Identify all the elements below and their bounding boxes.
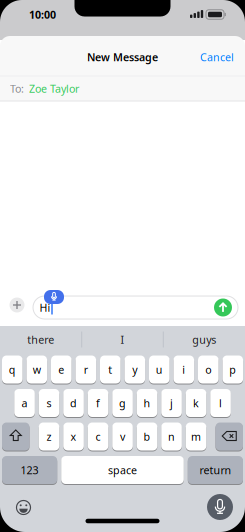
button[interactable]: Dictate: [207, 494, 233, 520]
button[interactable]: u: [149, 355, 170, 384]
button[interactable]: Delete: [215, 422, 243, 451]
button[interactable]: i: [173, 355, 194, 384]
staticText: Zoe Taylor: [29, 81, 79, 96]
button[interactable]: h: [137, 388, 157, 417]
button[interactable]: g: [112, 388, 133, 417]
button[interactable]: a: [14, 388, 35, 417]
staticText: x: [70, 429, 76, 444]
staticText: w: [33, 362, 41, 377]
staticText: To:: [10, 81, 24, 96]
staticText: 123: [21, 463, 39, 477]
button[interactable]: o: [198, 355, 219, 384]
button[interactable]: d: [63, 388, 84, 417]
staticText: n: [168, 429, 175, 444]
staticText: q: [9, 362, 16, 377]
button[interactable]: guys: [169, 327, 239, 351]
button[interactable]: x: [63, 422, 84, 451]
button[interactable]: Message: [33, 296, 238, 319]
staticText: f: [96, 396, 100, 410]
button[interactable]: p: [222, 355, 243, 384]
staticText: c: [95, 429, 100, 444]
staticText: New Message: [87, 50, 158, 64]
staticText: h: [144, 396, 151, 410]
button[interactable]: b: [137, 422, 157, 451]
staticText: k: [193, 396, 199, 410]
button[interactable]: q: [2, 355, 23, 384]
button[interactable]: Cancel: [200, 50, 234, 64]
button[interactable]: w: [26, 355, 47, 384]
staticText: l: [219, 396, 222, 410]
button[interactable]: k: [186, 388, 206, 417]
button[interactable]: there: [6, 327, 76, 351]
staticText: there: [27, 332, 54, 347]
staticText: I: [120, 332, 124, 347]
staticText: v: [120, 429, 125, 444]
staticText: Hi: [39, 300, 50, 315]
staticText: z: [46, 429, 51, 444]
button[interactable]: c: [88, 422, 108, 451]
staticText: j: [170, 396, 173, 410]
staticText: b: [144, 429, 151, 444]
button[interactable]: e: [51, 355, 72, 384]
staticText: g: [119, 396, 126, 410]
staticText: guys: [192, 332, 216, 347]
staticText: y: [132, 362, 137, 377]
button[interactable]: Shift: [2, 422, 29, 451]
button[interactable]: Emoji: [15, 499, 31, 515]
staticText: 10:00: [29, 7, 56, 22]
button[interactable]: return: [188, 455, 243, 484]
staticText: a: [22, 396, 28, 410]
button[interactable]: t: [100, 355, 121, 384]
button[interactable]: y: [124, 355, 145, 384]
staticText: p: [229, 362, 236, 377]
button[interactable]: 123: [2, 455, 57, 484]
button[interactable]: l: [210, 388, 231, 417]
staticText: m: [191, 429, 201, 444]
staticText: r: [84, 362, 88, 377]
staticText: e: [58, 362, 64, 377]
button[interactable]: s: [39, 388, 59, 417]
button[interactable]: r: [75, 355, 96, 384]
button[interactable]: m: [186, 422, 206, 451]
button[interactable]: n: [161, 422, 182, 451]
staticText: i: [182, 362, 185, 377]
button[interactable]: To:: [0, 76, 245, 101]
button[interactable]: Apps: [9, 297, 24, 312]
staticText: o: [205, 362, 211, 377]
button[interactable]: v: [112, 422, 133, 451]
staticText: s: [46, 396, 51, 410]
staticText: u: [156, 362, 163, 377]
staticText: t: [108, 362, 112, 377]
staticText: space: [108, 463, 137, 477]
button[interactable]: I: [87, 327, 157, 351]
button[interactable]: space: [61, 455, 184, 484]
button[interactable]: z: [39, 422, 59, 451]
staticText: Cancel: [200, 50, 234, 64]
staticText: d: [70, 396, 77, 410]
button[interactable]: f: [88, 388, 108, 417]
button[interactable]: j: [161, 388, 182, 417]
button[interactable]: Dictation: [44, 290, 64, 304]
staticText: return: [199, 463, 231, 477]
button[interactable]: Send: [214, 298, 232, 316]
